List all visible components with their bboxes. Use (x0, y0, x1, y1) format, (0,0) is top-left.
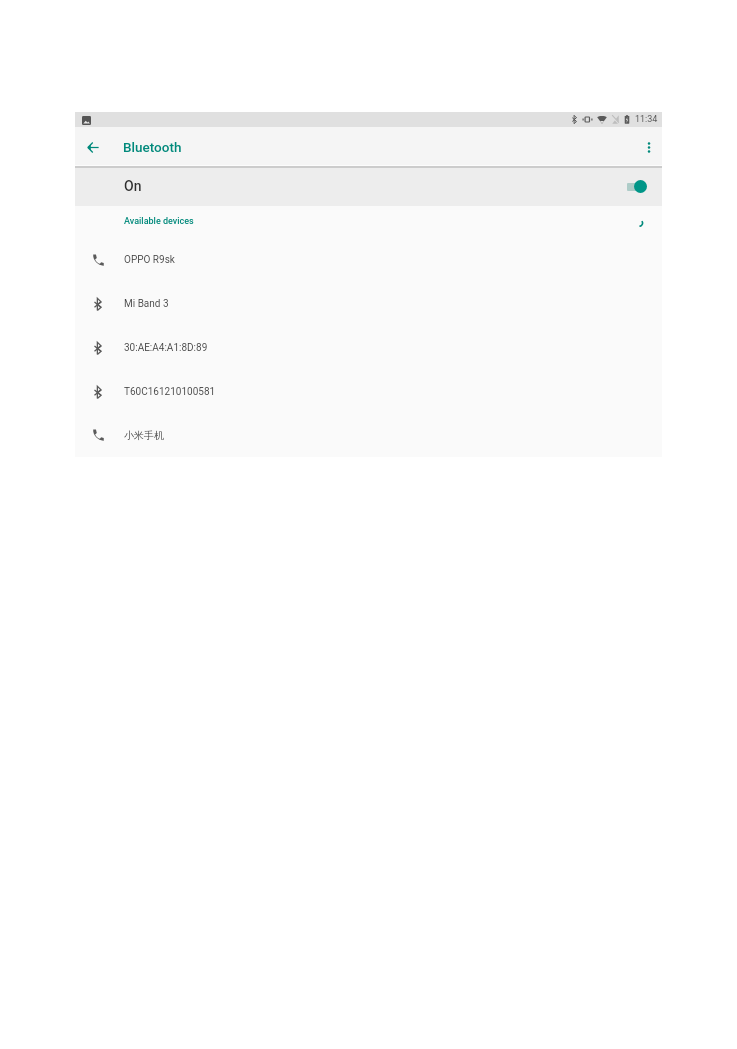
staticText: Bluetooth (123, 139, 182, 155)
staticText: 30:AE:A4:A1:8D:89 (124, 342, 208, 354)
button[interactable]: Bluetooth on/off toggle (618, 168, 656, 206)
staticText: 11:34 (635, 114, 658, 125)
button[interactable]: OPPO R9sk (75, 238, 662, 282)
button[interactable]: 30:AE:A4:A1:8D:89 (75, 326, 662, 370)
staticText: On (124, 178, 142, 194)
staticText: OPPO R9sk (124, 254, 175, 266)
button[interactable]: Back (75, 127, 111, 167)
staticText: 小米手机 (124, 429, 164, 442)
staticText: Mi Band 3 (124, 298, 169, 310)
button[interactable]: T60C161210100581 (75, 370, 662, 414)
button[interactable]: Mi Band 3 (75, 282, 662, 326)
button[interactable]: More options (636, 127, 662, 167)
button[interactable]: 小米手机 (75, 413, 662, 457)
button[interactable]: On (75, 168, 662, 206)
staticText: T60C161210100581 (124, 386, 216, 398)
staticText: Available devices (124, 216, 194, 227)
